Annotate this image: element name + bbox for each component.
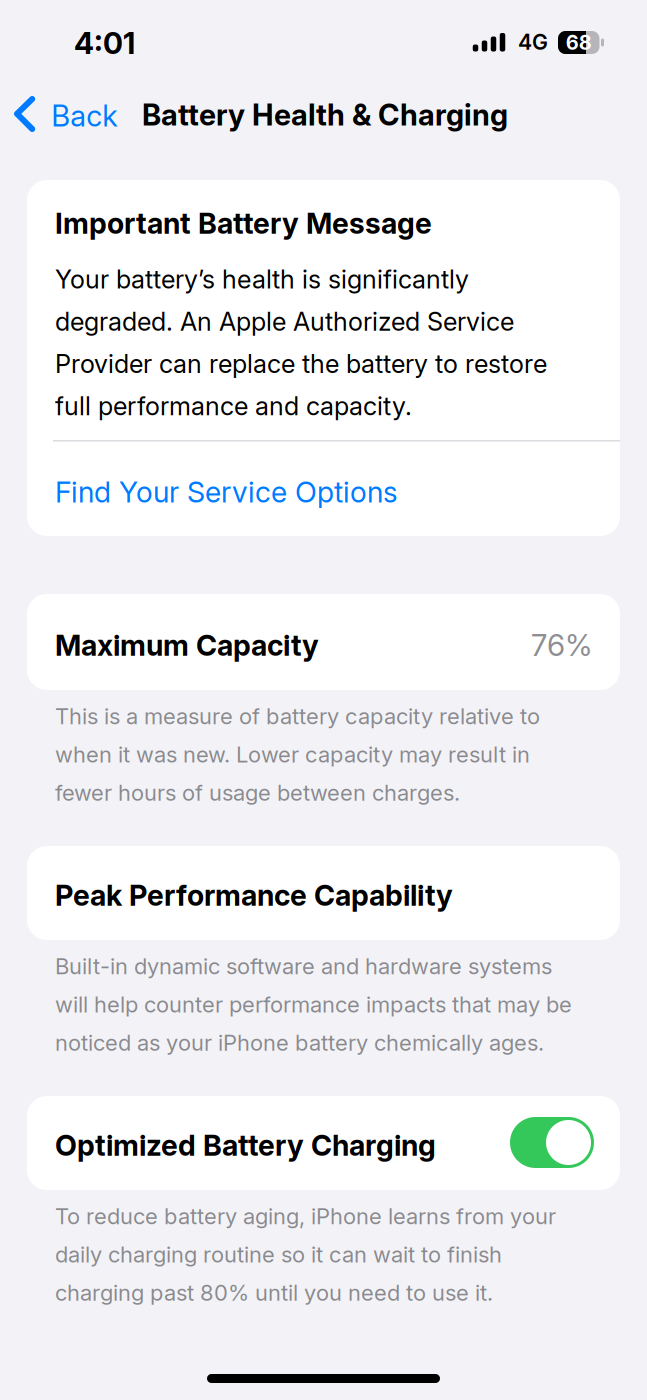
staticText: 4:01 <box>74 25 135 61</box>
staticText: Important Battery Message <box>55 206 432 241</box>
staticText: Optimized Battery Charging <box>55 1128 436 1163</box>
staticText: Maximum Capacity <box>55 628 319 663</box>
staticText: Your battery’s health is significantly d… <box>55 264 547 421</box>
staticText: 76% <box>531 627 592 663</box>
button[interactable]: Back <box>0 0 647 1400</box>
staticText: This is a measure of battery capacity re… <box>55 703 540 806</box>
button[interactable]: Find Your Service Options <box>0 0 647 1400</box>
staticText: 68 <box>566 30 592 55</box>
staticText: Find Your Service Options <box>55 475 398 509</box>
staticText: To reduce battery aging, iPhone learns f… <box>55 1203 556 1306</box>
staticText: Battery Health & Charging <box>142 97 508 132</box>
staticText: Back <box>51 98 117 134</box>
staticText: Peak Performance Capability <box>55 878 453 913</box>
staticText: Built-in dynamic software and hardware s… <box>55 953 572 1056</box>
staticText: 4G <box>518 29 548 55</box>
button[interactable]: Optimized Battery Charging <box>0 0 647 1400</box>
